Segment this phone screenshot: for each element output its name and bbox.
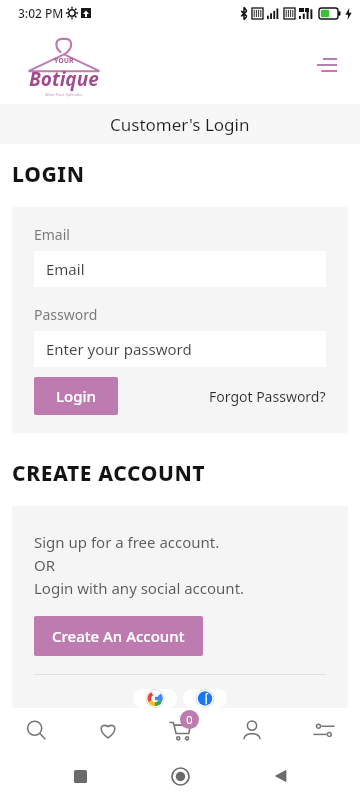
button[interactable]: Menu [310, 48, 344, 82]
button[interactable]: Sign in with Google [133, 689, 177, 708]
button[interactable]: Create An Account [34, 616, 203, 656]
staticText: Login with any social account. [34, 578, 245, 598]
button[interactable]: Login [34, 377, 118, 415]
staticText: Login [56, 386, 96, 406]
staticText: Sign up for a free account. [34, 532, 220, 552]
staticText: Enter your password [46, 339, 192, 359]
button[interactable]: Filters [288, 708, 360, 752]
staticText: Password [34, 305, 98, 324]
staticText: CREATE ACCOUNT [12, 459, 206, 488]
button[interactable]: Recents [59, 755, 101, 797]
button[interactable]: Email [34, 251, 326, 287]
staticText: Email [46, 259, 85, 279]
staticText: Email [34, 225, 70, 244]
button[interactable]: Sign in with Facebook [183, 689, 227, 708]
staticText: 0 [186, 712, 193, 727]
staticText: LOGIN [12, 160, 85, 189]
staticText: 3:02 PM [18, 5, 64, 21]
staticText: Wear Your Splendor [45, 92, 83, 97]
button[interactable]: Back [260, 755, 302, 797]
button[interactable]: Account [216, 708, 288, 752]
staticText: Create An Account [52, 626, 185, 646]
button[interactable]: Search [0, 708, 72, 752]
button[interactable]: Cart, 0 items [144, 708, 216, 752]
staticText: OR [34, 555, 56, 575]
staticText: Forgot Password? [209, 387, 326, 406]
button[interactable]: Home [159, 755, 201, 797]
button[interactable]: Forgot Password? [209, 381, 326, 412]
staticText: Customer's Login [110, 113, 250, 136]
button[interactable]: Wishlist [72, 708, 144, 752]
button[interactable]: Enter your password [34, 331, 326, 367]
staticText: YOUR [54, 56, 74, 66]
staticText: Botique [29, 66, 99, 92]
